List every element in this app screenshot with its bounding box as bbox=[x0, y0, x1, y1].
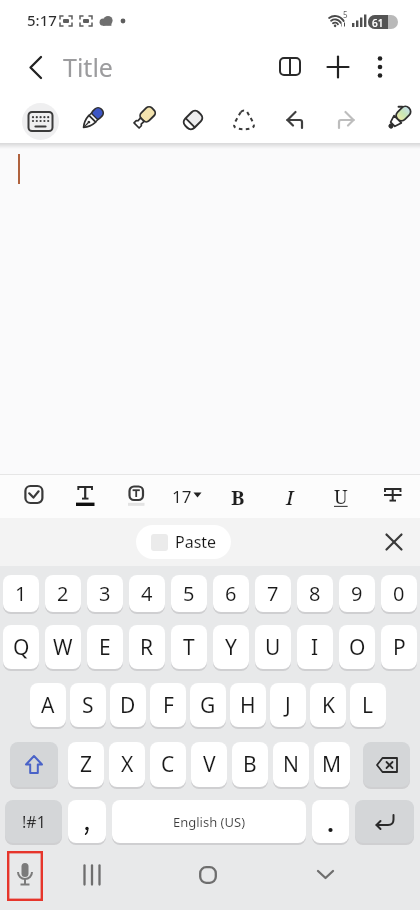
button[interactable] bbox=[372, 55, 388, 79]
button[interactable]: K bbox=[310, 683, 346, 727]
button[interactable]: T bbox=[171, 625, 207, 669]
button[interactable] bbox=[273, 99, 317, 143]
staticText: V bbox=[203, 750, 216, 779]
staticText: I bbox=[311, 633, 319, 662]
staticText: 9 bbox=[351, 580, 363, 607]
staticText: 7 bbox=[267, 580, 279, 607]
button[interactable] bbox=[385, 533, 403, 551]
button[interactable]: H bbox=[230, 683, 266, 727]
button[interactable] bbox=[68, 800, 106, 843]
button[interactable]: S bbox=[70, 683, 106, 727]
staticText: J bbox=[285, 691, 291, 720]
staticText: A bbox=[41, 691, 55, 720]
button[interactable] bbox=[7, 851, 43, 901]
button[interactable] bbox=[7, 851, 43, 901]
staticText: 1 bbox=[15, 580, 27, 607]
button[interactable] bbox=[326, 55, 350, 79]
staticText: Q bbox=[13, 633, 30, 662]
button[interactable]: D bbox=[110, 683, 146, 727]
button[interactable] bbox=[199, 866, 217, 884]
staticText: 5:17 bbox=[27, 10, 57, 30]
button[interactable]: 1 bbox=[3, 575, 39, 612]
staticText: 8 bbox=[309, 580, 321, 607]
button[interactable] bbox=[363, 742, 410, 787]
button[interactable] bbox=[120, 18, 126, 24]
button[interactable]: F bbox=[150, 683, 186, 727]
button[interactable]: 2 bbox=[45, 575, 81, 612]
button[interactable] bbox=[193, 492, 203, 500]
staticText: U bbox=[265, 633, 281, 662]
button[interactable]: W bbox=[45, 625, 81, 669]
button[interactable]: B bbox=[232, 742, 268, 787]
button[interactable]: !#1 bbox=[5, 800, 62, 843]
button[interactable]: 8 bbox=[297, 575, 333, 612]
button[interactable]: 0 bbox=[381, 575, 417, 612]
button[interactable] bbox=[171, 98, 215, 142]
button[interactable] bbox=[352, 13, 368, 28]
button[interactable]: Y bbox=[213, 625, 249, 669]
button[interactable]: P bbox=[381, 625, 417, 669]
button[interactable] bbox=[80, 863, 104, 887]
button[interactable]: 9 bbox=[339, 575, 375, 612]
button[interactable]: 5 bbox=[171, 575, 207, 612]
button[interactable]: 6 bbox=[213, 575, 249, 612]
button[interactable] bbox=[98, 14, 115, 27]
button[interactable] bbox=[222, 99, 266, 143]
button[interactable]: A bbox=[30, 683, 66, 727]
button[interactable] bbox=[78, 14, 94, 28]
staticText: !#1 bbox=[22, 811, 46, 833]
button[interactable]: Paste bbox=[136, 525, 231, 559]
button[interactable] bbox=[10, 742, 58, 787]
button[interactable]: O bbox=[339, 625, 375, 669]
button[interactable] bbox=[24, 54, 52, 82]
staticText: S bbox=[82, 691, 94, 720]
staticText: 5 bbox=[343, 9, 348, 20]
button[interactable] bbox=[326, 11, 348, 31]
button[interactable]: I bbox=[297, 625, 333, 669]
button[interactable]: 4 bbox=[129, 575, 165, 612]
button[interactable] bbox=[382, 483, 404, 509]
staticText: 6 bbox=[225, 580, 237, 607]
staticText: Y bbox=[225, 633, 237, 662]
button[interactable] bbox=[355, 800, 414, 843]
button[interactable]: U bbox=[255, 625, 291, 669]
button[interactable] bbox=[24, 485, 46, 507]
button[interactable] bbox=[58, 14, 74, 28]
staticText: Title bbox=[63, 50, 113, 84]
button[interactable]: G bbox=[190, 683, 226, 727]
button[interactable]: R bbox=[129, 625, 165, 669]
button[interactable] bbox=[74, 483, 96, 509]
staticText: C bbox=[161, 750, 175, 779]
button[interactable]: V bbox=[191, 742, 227, 787]
button[interactable] bbox=[120, 98, 164, 142]
button[interactable] bbox=[27, 108, 54, 135]
button[interactable]: X bbox=[109, 742, 145, 787]
button[interactable]: 3 bbox=[87, 575, 123, 612]
button[interactable] bbox=[22, 103, 59, 140]
staticText: H bbox=[240, 691, 256, 720]
button[interactable]: M bbox=[314, 742, 350, 787]
button[interactable]: N bbox=[273, 742, 309, 787]
button[interactable] bbox=[324, 99, 368, 143]
button[interactable]: J bbox=[270, 683, 306, 727]
button[interactable]: C bbox=[150, 742, 186, 787]
staticText: 0 bbox=[393, 580, 405, 607]
staticText: T bbox=[183, 633, 195, 662]
staticText: 3 bbox=[99, 580, 111, 607]
button[interactable]: Q bbox=[3, 625, 39, 669]
button[interactable]: L bbox=[350, 683, 386, 727]
button[interactable]: English (US) bbox=[112, 800, 306, 843]
staticText: R bbox=[140, 633, 154, 662]
button[interactable]: Z bbox=[68, 742, 104, 787]
staticText: P bbox=[393, 633, 406, 662]
button[interactable]: 7 bbox=[255, 575, 291, 612]
button[interactable] bbox=[375, 98, 419, 142]
button[interactable] bbox=[316, 868, 335, 881]
button[interactable] bbox=[312, 800, 349, 843]
button[interactable] bbox=[124, 483, 146, 509]
button[interactable] bbox=[278, 55, 302, 79]
staticText: 5 bbox=[183, 580, 195, 607]
staticText: F bbox=[163, 691, 174, 720]
button[interactable]: E bbox=[87, 625, 123, 669]
button[interactable] bbox=[69, 98, 113, 142]
